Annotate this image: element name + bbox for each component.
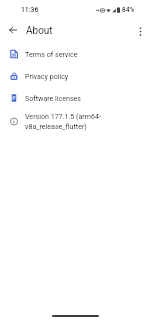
- button[interactable]: Software licenses: [0, 87, 150, 109]
- staticText: 11:36: [21, 6, 39, 14]
- button[interactable]: Privacy policy: [0, 65, 150, 87]
- staticText: Software licenses: [25, 94, 82, 102]
- button[interactable]: Terms of service: [0, 43, 150, 65]
- staticText: 84%: [122, 6, 135, 14]
- staticText: Terms of service: [25, 50, 78, 58]
- staticText: Version 177.1.5 (arm64-v8a_release_flutt…: [25, 112, 108, 131]
- staticText: Privacy policy: [25, 72, 69, 80]
- button[interactable]: More options: [130, 21, 150, 41]
- staticText: About: [26, 25, 53, 37]
- button[interactable]: Back: [2, 19, 24, 41]
- button[interactable]: Version 177.1.5 (arm64-v8a_release_flutt…: [0, 109, 150, 134]
